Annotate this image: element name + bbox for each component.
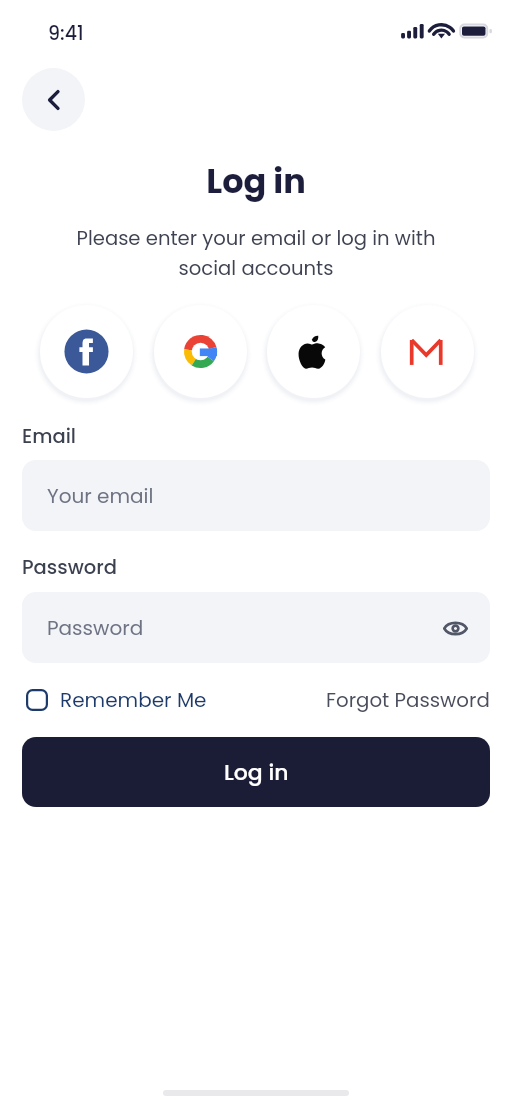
button[interactable]: Show password [440, 613, 470, 643]
staticText: Remember Me [60, 686, 207, 714]
staticText: Your email [47, 482, 154, 510]
staticText: Email [22, 423, 76, 450]
button[interactable]: Your email [22, 460, 490, 531]
button[interactable]: Log in [22, 737, 490, 807]
button[interactable]: Password [22, 592, 490, 663]
button[interactable]: Sign in with Gmail [375, 299, 479, 403]
staticText: 9:41 [48, 20, 84, 47]
staticText: Please enter your email or log in with s… [0, 224, 512, 282]
staticText: Log in [0, 158, 512, 205]
button[interactable]: Forgot Password [326, 686, 490, 714]
button[interactable]: Sign in with Facebook [34, 299, 138, 403]
button[interactable]: Sign in with Google [148, 299, 252, 403]
staticText: Password [47, 614, 144, 642]
button[interactable]: Back [22, 68, 85, 131]
button[interactable]: Sign in with Apple [261, 299, 365, 403]
staticText: Password [22, 554, 117, 581]
staticText: Log in [224, 757, 289, 788]
button[interactable]: Remember Me [22, 684, 207, 716]
